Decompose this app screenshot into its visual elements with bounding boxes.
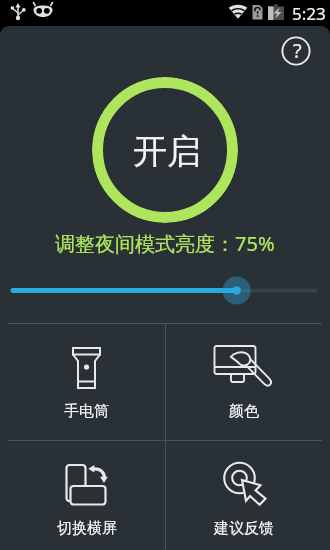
button[interactable]: Help bbox=[278, 33, 314, 69]
staticText: 建议反馈 bbox=[214, 519, 274, 538]
button[interactable]: Night mode brightness slider, 75% bbox=[0, 270, 330, 310]
staticText: 5:23 bbox=[292, 2, 326, 25]
button[interactable]: 切换横屏 bbox=[8, 441, 165, 550]
staticText: 调整夜间模式亮度：75% bbox=[55, 230, 275, 257]
button[interactable]: 手电筒 bbox=[8, 324, 165, 440]
button[interactable]: 开启 bbox=[92, 77, 238, 223]
button[interactable]: 颜色 bbox=[166, 324, 322, 440]
staticText: ? bbox=[293, 37, 302, 64]
staticText: 开启 bbox=[133, 130, 201, 173]
staticText: 颜色 bbox=[229, 402, 259, 421]
button[interactable]: 建议反馈 bbox=[166, 441, 322, 550]
staticText: 切换横屏 bbox=[57, 519, 117, 538]
staticText: 手电筒 bbox=[64, 402, 109, 421]
